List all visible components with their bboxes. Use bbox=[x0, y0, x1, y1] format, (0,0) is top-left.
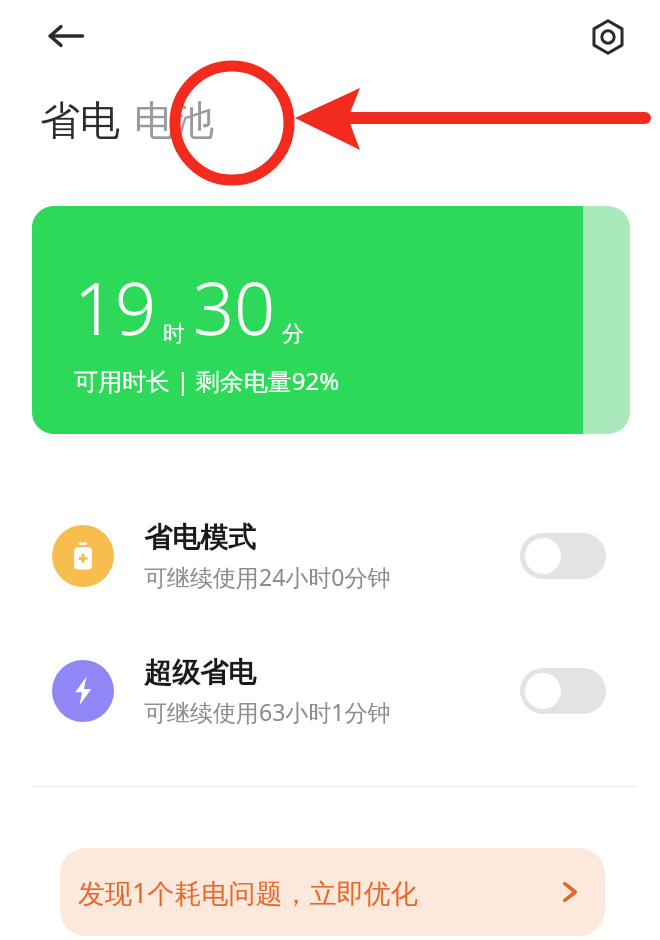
staticText: 省电 bbox=[40, 95, 120, 145]
staticText: 电池 bbox=[134, 95, 214, 145]
button[interactable]: 省电模式 bbox=[520, 533, 606, 579]
button[interactable]: 省电模式 bbox=[0, 504, 660, 608]
button[interactable]: Settings bbox=[580, 9, 636, 65]
button[interactable]: 超级省电 bbox=[0, 639, 660, 743]
staticText: 30 bbox=[193, 258, 276, 356]
staticText: 可继续使用24小时0分钟 bbox=[144, 561, 391, 592]
staticText: 19 bbox=[74, 258, 157, 356]
button[interactable]: 超级省电 bbox=[520, 668, 606, 714]
staticText: 可用时长 | 剩余电量92% bbox=[74, 364, 340, 397]
staticText: 发现1个耗电问题，立即优化 bbox=[78, 874, 418, 911]
button[interactable]: 电池 bbox=[134, 95, 214, 145]
button[interactable]: Back bbox=[38, 8, 94, 64]
staticText: 时 bbox=[163, 320, 185, 348]
button[interactable]: 发现1个耗电问题，立即优化 bbox=[60, 848, 605, 936]
staticText: 可继续使用63小时1分钟 bbox=[144, 696, 391, 727]
staticText: 省电模式 bbox=[144, 520, 256, 555]
button[interactable]: 省电 bbox=[40, 95, 120, 145]
button[interactable]: 19 bbox=[32, 206, 630, 434]
staticText: 分 bbox=[282, 320, 304, 348]
staticText: 超级省电 bbox=[144, 655, 256, 690]
